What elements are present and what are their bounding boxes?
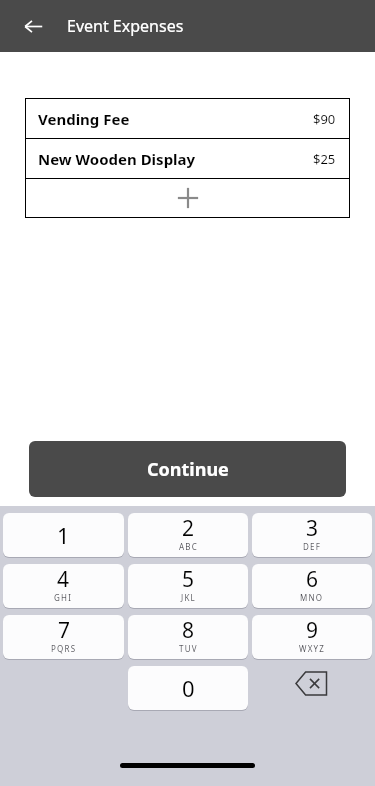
staticText: 4 <box>57 565 70 594</box>
button[interactable]: Back <box>17 10 49 42</box>
staticText: MNO <box>300 592 324 603</box>
staticText: 1 <box>57 520 70 550</box>
staticText: WXYZ <box>299 643 326 654</box>
staticText: DEF <box>303 541 322 552</box>
button[interactable]: 8 <box>128 615 248 659</box>
staticText: 7 <box>58 616 71 645</box>
staticText: Continue <box>147 457 229 482</box>
staticText: 2 <box>182 514 195 543</box>
button[interactable]: New Wooden Display <box>25 139 350 178</box>
staticText: 6 <box>306 565 319 594</box>
button[interactable]: Continue <box>29 441 346 497</box>
staticText: ABC <box>179 541 198 552</box>
staticText: 3 <box>306 514 319 543</box>
staticText: JKL <box>181 592 196 603</box>
staticText: PQRS <box>51 643 77 654</box>
staticText: GHI <box>54 592 73 603</box>
button[interactable]: 0 <box>128 666 248 710</box>
staticText: $90 <box>313 110 336 128</box>
staticText: $25 <box>313 150 336 168</box>
button[interactable]: 7 <box>3 615 124 659</box>
button[interactable]: 6 <box>252 564 372 608</box>
staticText: 0 <box>182 673 195 703</box>
button[interactable]: 2 <box>128 513 248 557</box>
staticText: Event Expenses <box>67 15 184 37</box>
button[interactable]: Backspace <box>289 666 335 700</box>
button[interactable]: 4 <box>3 564 124 608</box>
button[interactable]: 3 <box>252 513 372 557</box>
button[interactable]: 5 <box>128 564 248 608</box>
button[interactable]: Vending Fee <box>25 99 350 138</box>
button[interactable]: Add expense <box>25 179 350 217</box>
staticText: New Wooden Display <box>38 149 196 169</box>
staticText: Vending Fee <box>38 109 130 129</box>
button[interactable]: 1 <box>3 513 124 557</box>
staticText: 5 <box>182 565 195 594</box>
button[interactable]: 9 <box>252 615 372 659</box>
staticText: TUV <box>179 643 198 654</box>
staticText: 9 <box>306 616 319 645</box>
staticText: 8 <box>182 616 195 645</box>
